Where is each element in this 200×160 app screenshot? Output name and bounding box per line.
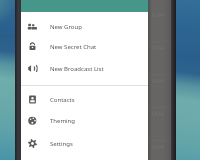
staticText: Settings: [50, 140, 73, 148]
button[interactable]: Theming: [21, 110, 148, 131]
staticText: New Secret Chat: [50, 43, 97, 51]
staticText: 12:44: [151, 144, 164, 151]
staticText: 12:44: [151, 111, 164, 118]
button[interactable]: Settings: [21, 133, 148, 154]
staticText: 12:44: [151, 12, 164, 19]
staticText: Contacts: [50, 96, 75, 104]
staticText: 12:44: [151, 45, 164, 52]
button[interactable]: New Secret Chat: [21, 36, 148, 57]
staticText: New Group: [50, 23, 82, 31]
staticText: New Broadcast List: [50, 65, 104, 73]
button[interactable]: Contacts: [21, 89, 148, 110]
button[interactable]: New Broadcast List: [21, 58, 148, 79]
staticText: Theming: [50, 117, 75, 125]
staticText: 12:44: [151, 78, 164, 85]
button[interactable]: New Group: [21, 16, 148, 37]
